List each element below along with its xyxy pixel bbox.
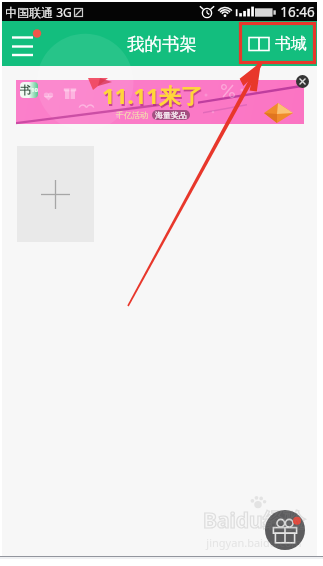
button[interactable]: 书 bbox=[16, 80, 304, 124]
staticText: 中国联通 3G bbox=[5, 4, 72, 20]
staticText: 10 bbox=[31, 86, 38, 94]
staticText: 千亿活动 bbox=[116, 110, 148, 120]
staticText: 11.11来了 bbox=[103, 82, 204, 112]
staticText: 11.11来了 bbox=[102, 80, 203, 110]
staticText: 海量奖品 bbox=[155, 110, 187, 120]
button[interactable]: Shopping cart bbox=[265, 510, 305, 550]
button[interactable]: 书城 bbox=[248, 34, 307, 54]
staticText: Baidu经验 bbox=[203, 506, 305, 535]
staticText: jingyan.baidu.com bbox=[206, 535, 302, 550]
button[interactable]: Menu bbox=[10, 28, 42, 60]
staticText: 16:46 bbox=[280, 3, 315, 21]
staticText: 我的书架 bbox=[127, 33, 197, 55]
staticText: 书 bbox=[20, 83, 31, 97]
button[interactable]: Close banner bbox=[296, 75, 309, 88]
staticText: 书城 bbox=[275, 34, 307, 54]
button[interactable]: Add book bbox=[17, 146, 94, 242]
